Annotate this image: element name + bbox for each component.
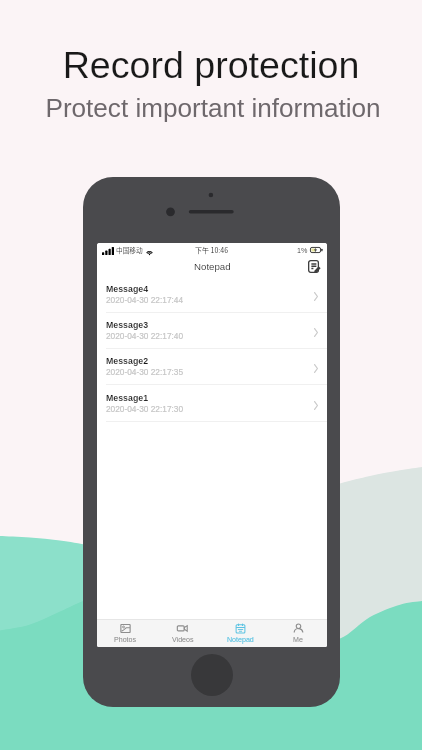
button[interactable]: Message4 xyxy=(97,277,327,313)
button[interactable]: Message3 xyxy=(97,313,327,349)
staticText: 2020-04-30 22:17:30 xyxy=(106,404,184,413)
button[interactable]: Message1 xyxy=(97,386,327,422)
staticText: Notepad xyxy=(194,261,231,272)
staticText: Protect important information xyxy=(2,93,422,122)
staticText: 中国移动 xyxy=(116,245,143,255)
staticText: 2020-04-30 22:17:35 xyxy=(106,367,184,376)
staticText: Photos xyxy=(114,636,137,644)
staticText: Message3 xyxy=(106,320,149,330)
staticText: 下午 10:46 xyxy=(195,245,229,255)
button[interactable]: Message2 xyxy=(97,349,327,385)
button[interactable]: Notepad xyxy=(211,620,269,647)
staticText: Record protection xyxy=(0,44,422,86)
staticText: Message4 xyxy=(106,284,149,294)
staticText: 2020-04-30 22:17:44 xyxy=(106,295,184,304)
button[interactable]: New note xyxy=(305,257,322,275)
button[interactable]: Me xyxy=(269,620,327,647)
button[interactable]: Videos xyxy=(154,620,211,647)
staticText: Me xyxy=(293,636,303,644)
staticText: Videos xyxy=(172,636,194,644)
staticText: Message2 xyxy=(106,356,149,366)
staticText: 2020-04-30 22:17:40 xyxy=(106,331,184,340)
staticText: Message1 xyxy=(106,393,149,403)
button[interactable]: Photos xyxy=(97,620,154,647)
staticText: Notepad xyxy=(227,636,254,644)
staticText: 1% xyxy=(297,246,308,254)
